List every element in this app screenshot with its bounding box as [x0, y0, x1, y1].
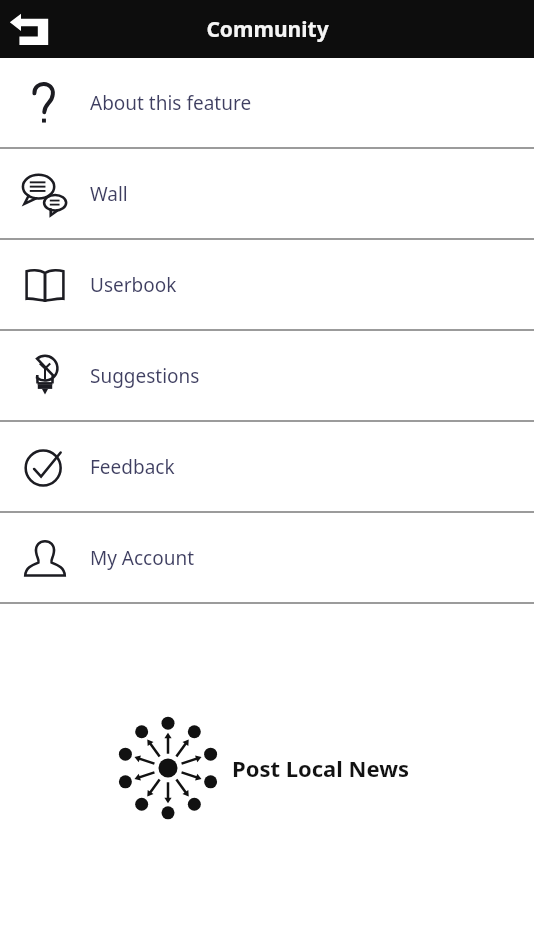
staticText: Post Local News	[232, 753, 410, 783]
staticText: Wall	[90, 181, 128, 207]
staticText: My Account	[90, 545, 195, 571]
button[interactable]: Feedback	[0, 422, 534, 511]
staticText: About this feature	[90, 90, 252, 116]
staticText: Userbook	[90, 272, 177, 298]
button[interactable]: About this feature	[0, 58, 534, 147]
staticText: Suggestions	[90, 363, 200, 389]
button[interactable]: Suggestions	[0, 331, 534, 420]
button[interactable]: Wall	[0, 149, 534, 238]
button[interactable]: My Account	[0, 513, 534, 602]
button[interactable]: Back	[0, 0, 58, 58]
button[interactable]: Userbook	[0, 240, 534, 329]
staticText: Feedback	[90, 454, 175, 480]
staticText: Community	[206, 15, 329, 44]
